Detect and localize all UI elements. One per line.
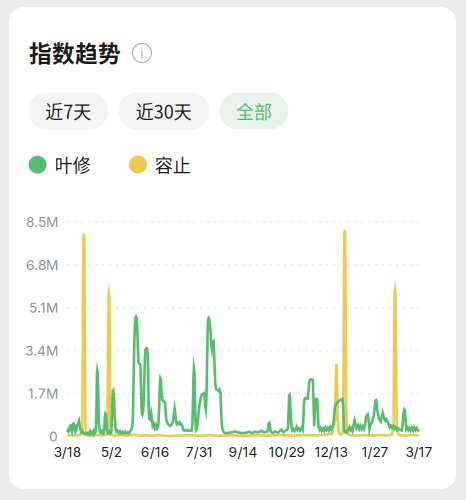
button[interactable]: 近30天 — [118, 92, 209, 129]
staticText: 5/2 — [101, 444, 122, 460]
staticText: 0 — [49, 428, 58, 445]
staticText: 12/13 — [315, 444, 348, 460]
staticText: 1/27 — [361, 444, 388, 460]
staticText: 3/17 — [405, 444, 432, 460]
staticText: 容止 — [155, 151, 191, 177]
staticText: 全部 — [236, 98, 272, 124]
staticText: i — [140, 44, 144, 62]
staticText: 叶修 — [55, 151, 91, 177]
staticText: 1.7M — [28, 385, 58, 402]
staticText: 6/16 — [141, 444, 170, 460]
staticText: 指数趋势 — [29, 36, 121, 68]
staticText: 7/31 — [186, 444, 213, 460]
staticText: 近7天 — [45, 98, 91, 124]
staticText: 5.1M — [29, 299, 58, 316]
staticText: 6.8M — [26, 257, 58, 273]
button[interactable]: 近7天 — [28, 92, 108, 129]
staticText: 3.4M — [25, 342, 58, 359]
staticText: 3/18 — [54, 444, 81, 460]
staticText: 9/14 — [229, 444, 258, 460]
staticText: 8.5M — [26, 214, 58, 230]
staticText: 近30天 — [136, 98, 192, 124]
staticText: 10/29 — [269, 444, 306, 460]
button[interactable]: About index trend — [132, 43, 152, 63]
button[interactable]: 全部 — [219, 92, 288, 129]
